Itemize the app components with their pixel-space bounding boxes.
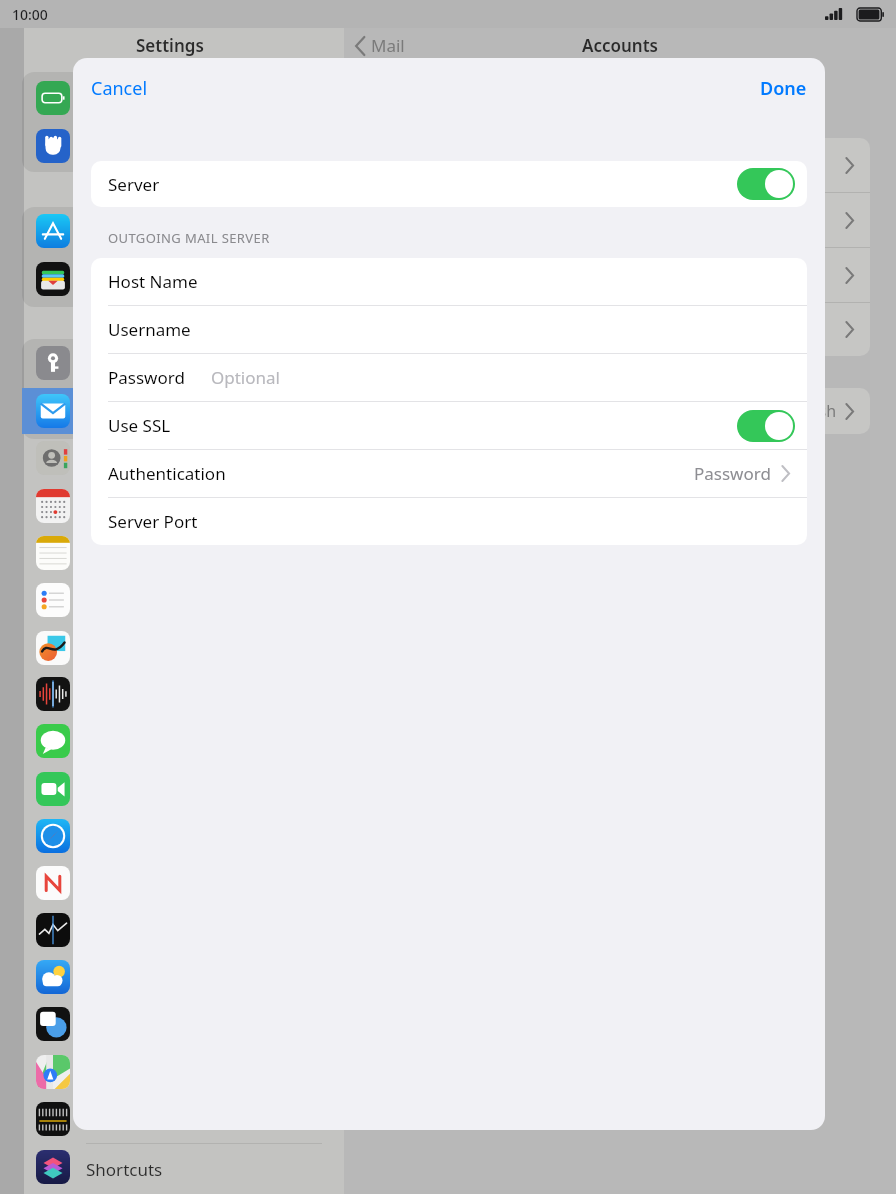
- staticText: Host Name: [108, 270, 198, 293]
- button[interactable]: weather: [36, 960, 70, 994]
- button[interactable]: key: [36, 346, 70, 380]
- staticText: Settings: [136, 34, 204, 57]
- button[interactable]: Authentication: [91, 450, 807, 497]
- staticText: Optional: [211, 366, 280, 389]
- button[interactable]: Shortcuts: [0, 1143, 344, 1194]
- button[interactable]: Username: [91, 306, 807, 353]
- button[interactable]: calendar: [36, 489, 70, 523]
- button[interactable]: [366, 303, 870, 356]
- staticText: Shortcuts: [86, 1158, 163, 1181]
- button[interactable]: battery: [36, 81, 70, 115]
- button[interactable]: [366, 248, 870, 302]
- button[interactable]: Toggle on: [737, 410, 795, 442]
- button[interactable]: podcast: [36, 1102, 70, 1136]
- button[interactable]: mail: [36, 394, 70, 428]
- staticText: Done: [760, 76, 807, 101]
- button[interactable]: messages: [36, 724, 70, 758]
- button[interactable]: Server Port: [91, 498, 807, 545]
- button[interactable]: stocks: [36, 913, 70, 947]
- staticText: Password: [108, 366, 185, 389]
- staticText: Cancel: [91, 76, 148, 101]
- button[interactable]: hand: [36, 129, 70, 163]
- button[interactable]: Cancel: [73, 68, 166, 109]
- button[interactable]: maps: [36, 1055, 70, 1089]
- button[interactable]: contacts: [36, 441, 70, 475]
- staticText: Push: [799, 400, 837, 422]
- staticText: 10:00: [12, 5, 48, 24]
- staticText: Password: [694, 462, 771, 485]
- button[interactable]: shortcuts: [36, 1150, 70, 1184]
- button[interactable]: Toggle on: [737, 168, 795, 200]
- button[interactable]: Done: [742, 68, 825, 109]
- button[interactable]: freeform: [36, 631, 70, 665]
- button[interactable]: appstore: [36, 214, 70, 248]
- button[interactable]: facetime: [36, 772, 70, 806]
- staticText: Server: [108, 173, 160, 196]
- button[interactable]: [366, 193, 870, 247]
- staticText: Mail: [371, 34, 405, 57]
- button[interactable]: reminders: [36, 583, 70, 617]
- button[interactable]: notes: [36, 536, 70, 570]
- staticText: OUTGOING MAIL SERVER: [108, 229, 270, 247]
- button[interactable]: Host Name: [91, 258, 807, 305]
- button[interactable]: [366, 138, 870, 192]
- button[interactable]: wallet: [36, 262, 70, 296]
- button[interactable]: news: [36, 866, 70, 900]
- button[interactable]: voice: [36, 677, 70, 711]
- staticText: Authentication: [108, 462, 226, 485]
- button[interactable]: translate: [36, 1007, 70, 1041]
- button[interactable]: Mail: [355, 34, 405, 57]
- button[interactable]: Push: [366, 388, 870, 434]
- staticText: Username: [108, 318, 191, 341]
- staticText: Accounts: [582, 34, 658, 57]
- button[interactable]: Use SSL: [91, 402, 807, 449]
- staticText: Server Port: [108, 510, 198, 533]
- button[interactable]: safari: [36, 819, 70, 853]
- button[interactable]: Password: [91, 354, 807, 401]
- button[interactable]: Server: [91, 161, 807, 207]
- staticText: Use SSL: [108, 414, 171, 437]
